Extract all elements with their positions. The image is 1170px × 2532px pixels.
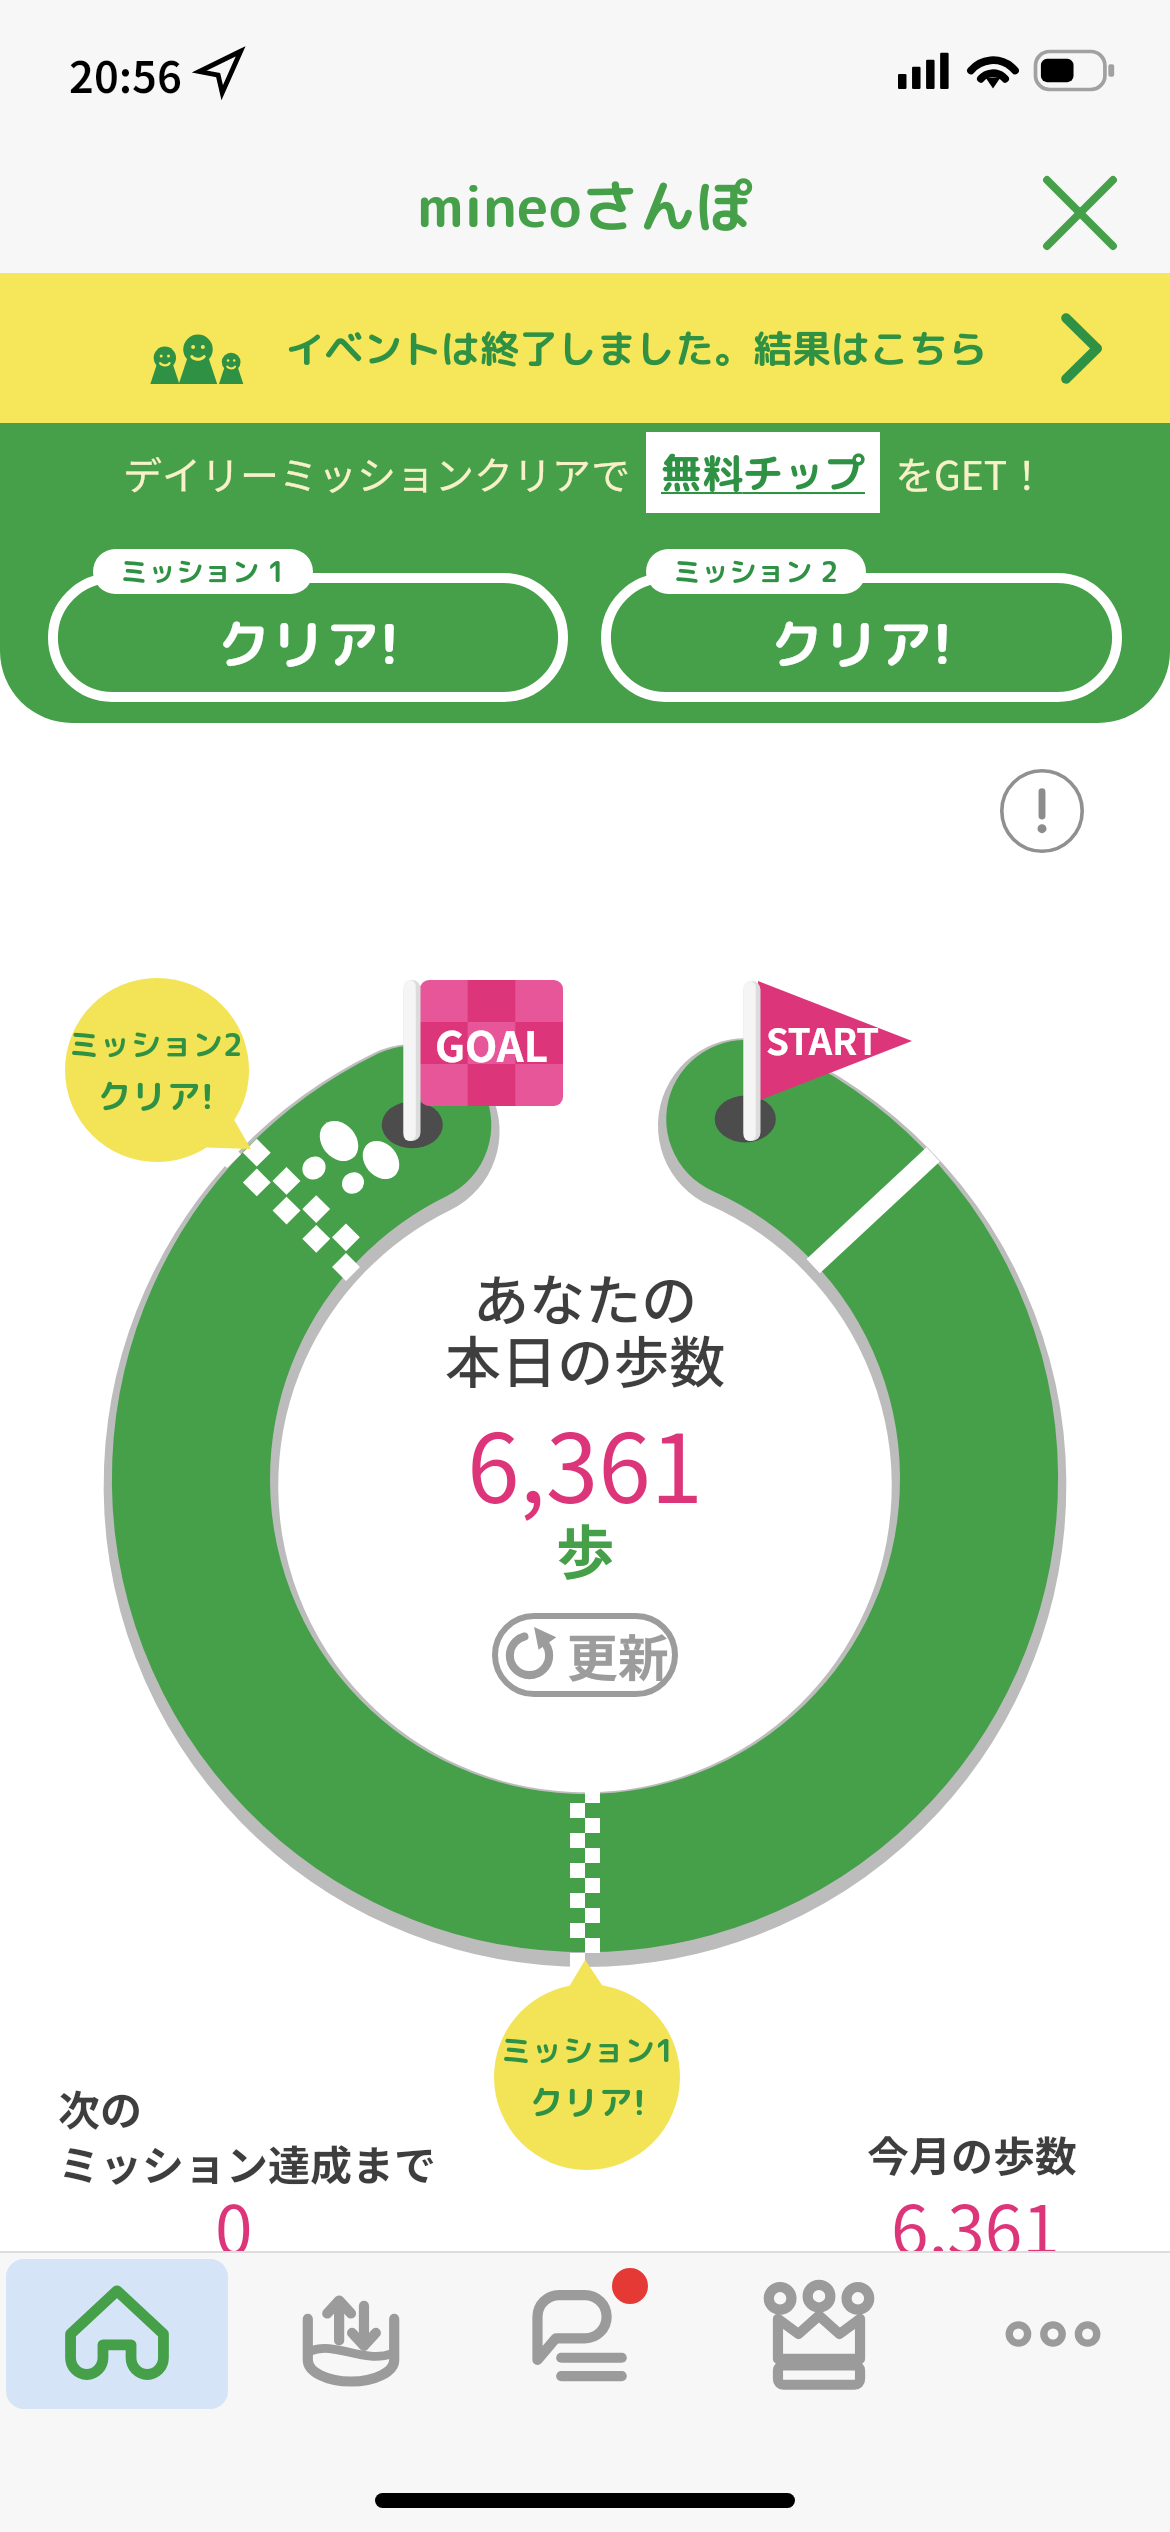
staticText: クリア!: [217, 606, 400, 681]
staticText: あなたの: [473, 1256, 698, 1337]
staticText: 本日の歩数: [445, 1318, 726, 1399]
staticText: ミッション 1: [120, 552, 286, 591]
staticText: GOAL: [435, 1013, 548, 1074]
staticText: ミッション1: [500, 2029, 675, 2072]
staticText: 今月の歩数: [867, 2123, 1078, 2184]
button[interactable]: Home: [6, 2259, 228, 2409]
button[interactable]: 更新: [492, 1613, 678, 1697]
button[interactable]: Information: [1000, 769, 1084, 853]
button[interactable]: Activity: [240, 2259, 462, 2409]
staticText: クリア!: [97, 1072, 214, 1120]
button[interactable]: Messages: [474, 2259, 696, 2409]
button[interactable]: Close: [1014, 147, 1146, 279]
staticText: 20:56: [69, 43, 182, 105]
staticText: 無料チップ: [661, 444, 865, 501]
button[interactable]: クリア!: [48, 573, 568, 702]
button[interactable]: イベントは終了しました。結果はこちら: [0, 273, 1170, 423]
button[interactable]: More: [942, 2259, 1164, 2409]
staticText: 6,361: [467, 1393, 704, 1530]
staticText: クリア!: [770, 606, 953, 681]
button[interactable]: 無料チップ: [646, 432, 880, 513]
staticText: mineoさんぽ: [417, 166, 753, 246]
staticText: 0: [215, 2177, 253, 2275]
staticText: デイリーミッションクリアで: [123, 445, 631, 501]
staticText: 次の: [58, 2077, 143, 2138]
staticText: START: [766, 1013, 880, 1066]
staticText: をGET！: [895, 445, 1047, 501]
button[interactable]: Ranking: [708, 2259, 930, 2409]
staticText: イベントは終了しました。結果はこちら: [285, 321, 988, 375]
staticText: 更新: [567, 1618, 670, 1692]
staticText: 6,361: [891, 2177, 1060, 2275]
staticText: ミッション達成まで: [58, 2132, 437, 2193]
staticText: クリア!: [529, 2078, 646, 2126]
staticText: ミッション 2: [673, 552, 839, 591]
button[interactable]: クリア!: [601, 573, 1122, 702]
staticText: 歩: [556, 1506, 615, 1591]
staticText: ミッション2: [68, 1023, 243, 1066]
